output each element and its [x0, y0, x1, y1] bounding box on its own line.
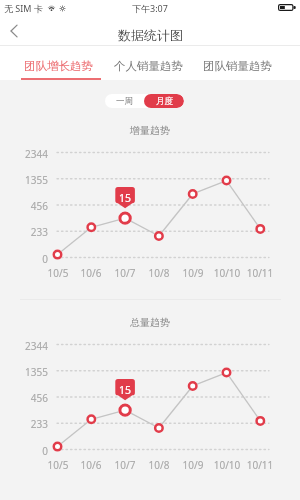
staticText: 15: [115, 383, 135, 397]
staticText: 10/10: [207, 266, 247, 280]
staticText: 456: [0, 199, 48, 213]
staticText: 总量趋势: [0, 316, 300, 329]
staticText: 10/6: [71, 266, 111, 280]
staticText: 233: [0, 417, 48, 431]
staticText: 10/9: [173, 458, 213, 472]
staticText: 1355: [0, 173, 48, 187]
staticText: 10/7: [105, 266, 145, 280]
staticText: 10/11: [240, 266, 280, 280]
staticText: 10/9: [173, 266, 213, 280]
staticText: 数据统计图: [118, 27, 183, 43]
staticText: 1355: [0, 365, 48, 379]
button[interactable]: 一周: [105, 94, 144, 108]
staticText: 10/11: [240, 458, 280, 472]
staticText: 团队增长趋势: [24, 59, 93, 73]
staticText: 2344: [0, 339, 48, 353]
staticText: 无 SIM 卡: [4, 2, 43, 14]
staticText: 10/5: [38, 458, 78, 472]
staticText: 下午3:07: [132, 2, 168, 14]
staticText: 233: [0, 225, 48, 239]
staticText: 10/7: [105, 458, 145, 472]
staticText: 15: [115, 191, 135, 205]
staticText: 10/8: [139, 458, 179, 472]
button[interactable]: 个人销量趋势: [108, 46, 188, 80]
staticText: 10/8: [139, 266, 179, 280]
staticText: 增量趋势: [0, 124, 300, 137]
staticText: 0: [0, 252, 48, 266]
staticText: 一周: [116, 96, 133, 107]
button[interactable]: 团队增长趋势: [18, 46, 98, 80]
staticText: 月度: [156, 96, 173, 107]
staticText: 团队销量趋势: [203, 59, 272, 73]
button[interactable]: 月度: [144, 94, 184, 108]
button[interactable]: 团队销量趋势: [197, 46, 277, 80]
staticText: 2344: [0, 147, 48, 161]
staticText: 10/5: [38, 266, 78, 280]
staticText: 10/10: [207, 458, 247, 472]
button[interactable]: Back: [2, 19, 26, 43]
staticText: 10/6: [71, 458, 111, 472]
staticText: 个人销量趋势: [114, 59, 183, 73]
staticText: 456: [0, 391, 48, 405]
staticText: 0: [0, 444, 48, 458]
